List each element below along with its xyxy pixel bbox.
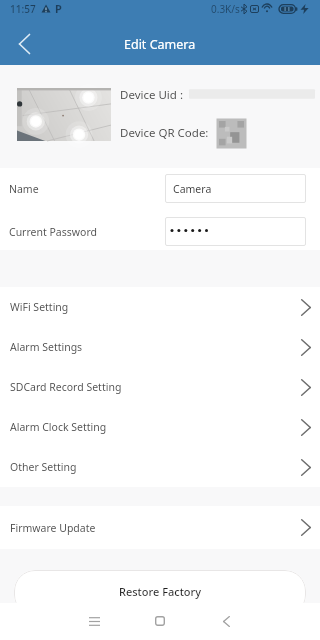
- button[interactable]: Other Setting: [0, 447, 320, 487]
- button[interactable]: WiFi Setting: [0, 287, 320, 327]
- staticText: Current Password: [9, 225, 98, 239]
- staticText: Name: [9, 182, 39, 196]
- staticText: Alarm Settings: [10, 340, 83, 354]
- button[interactable]: Recents: [79, 606, 109, 636]
- staticText: 11:57: [10, 2, 36, 16]
- staticText: Edit Camera: [124, 36, 196, 53]
- staticText: Firmware Update: [10, 521, 96, 535]
- button[interactable]: Back: [211, 606, 241, 636]
- staticText: SDCard Record Setting: [10, 380, 122, 394]
- staticText: Other Setting: [10, 460, 77, 474]
- button[interactable]: Home: [145, 606, 175, 636]
- staticText: Camera: [173, 182, 212, 196]
- button[interactable]: Back: [0, 22, 48, 65]
- button[interactable]: SDCard Record Setting: [0, 367, 320, 407]
- button[interactable]: Camera: [165, 174, 306, 203]
- button[interactable]: Restore Factory: [14, 570, 306, 616]
- staticText: Alarm Clock Setting: [10, 420, 107, 434]
- button[interactable]: Firmware Update: [0, 506, 320, 549]
- staticText: 0.3K/s: [211, 2, 240, 16]
- button[interactable]: [165, 217, 306, 246]
- staticText: WiFi Setting: [10, 300, 69, 314]
- button[interactable]: Alarm Clock Setting: [0, 407, 320, 447]
- staticText: Device Uid :: [120, 87, 183, 101]
- staticText: Device QR Code:: [120, 125, 209, 141]
- staticText: P: [55, 1, 62, 16]
- staticText: Restore Factory: [119, 584, 202, 599]
- button[interactable]: Alarm Settings: [0, 327, 320, 367]
